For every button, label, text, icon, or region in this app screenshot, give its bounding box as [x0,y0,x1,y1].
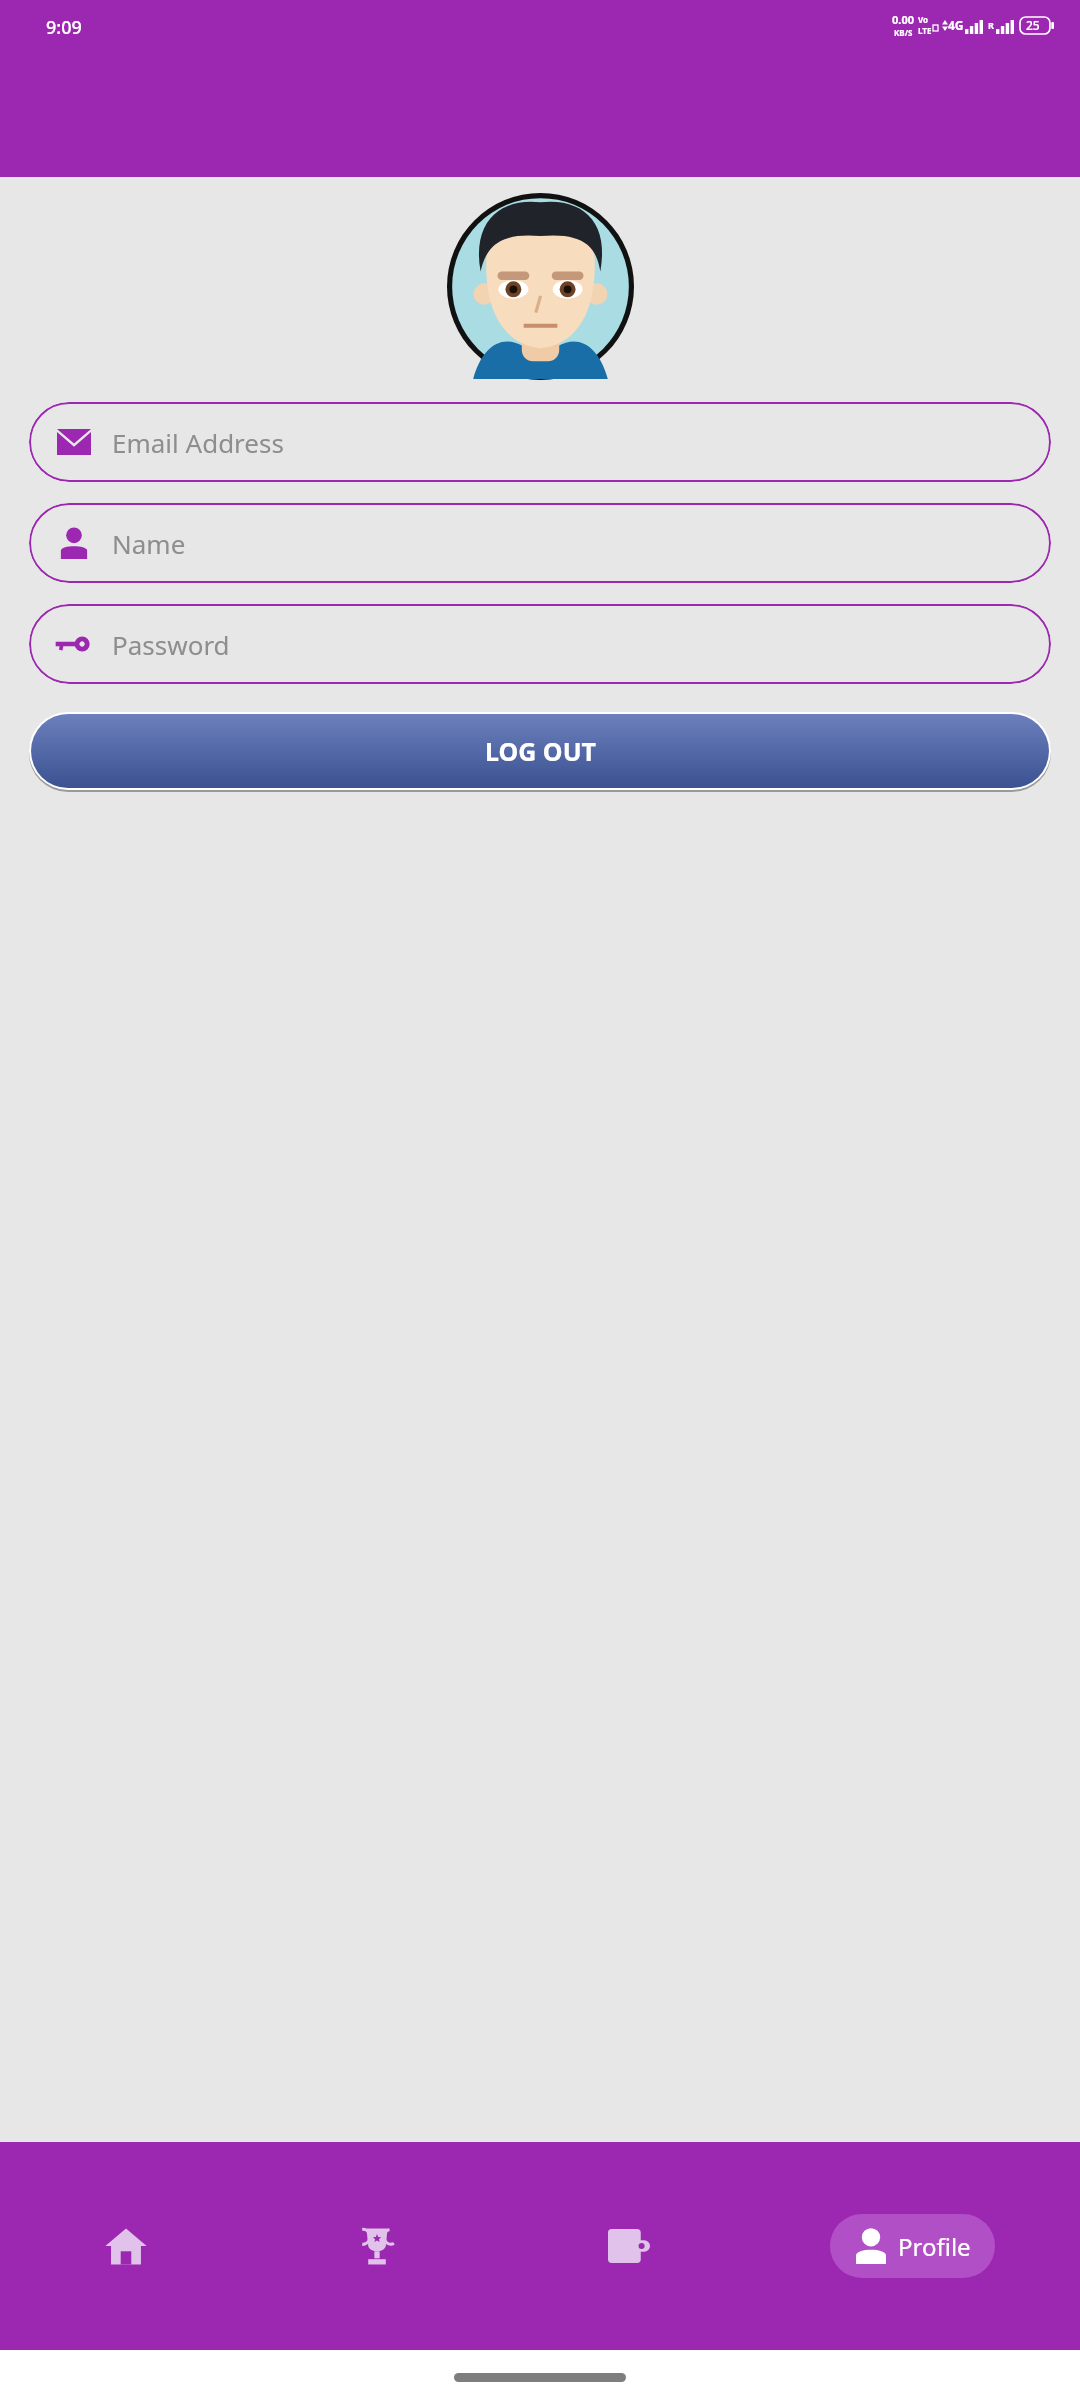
staticText: Name [112,526,186,561]
staticText: LOG OUT [485,734,596,768]
staticText: Profile [898,2230,971,2263]
staticText: LTE [918,25,932,36]
button[interactable]: Name [29,503,1051,583]
staticText: 0.00 [892,12,914,27]
button[interactable]: Profile [830,2214,995,2278]
button[interactable]: Password [29,604,1051,684]
staticText: Email Address [112,425,284,460]
staticText: Password [112,627,230,662]
staticText: KB/S [894,27,913,38]
staticText: 9:09 [46,15,82,40]
button[interactable]: Rewards [251,2142,503,2350]
button[interactable]: Wallet [503,2142,755,2350]
button[interactable]: Email Address [29,402,1051,482]
staticText: 4G [948,17,964,33]
staticText: R [988,19,994,31]
button[interactable]: LOG OUT [31,714,1049,788]
staticText: 25 [1026,17,1040,33]
button[interactable]: Home [0,2142,251,2350]
staticText: Vo [918,14,929,25]
